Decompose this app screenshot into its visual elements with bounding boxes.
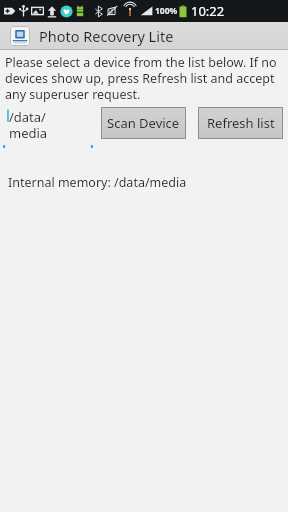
- staticText: Photo Recovery Lite: [39, 26, 174, 46]
- staticText: Internal memory: /data/media: [8, 174, 187, 191]
- staticText: 100%: [155, 5, 178, 17]
- staticText: Please select a device from the list bel…: [5, 54, 283, 103]
- staticText: 10:22: [191, 2, 225, 20]
- button[interactable]: Refresh list: [198, 107, 283, 139]
- button[interactable]: /data/ media: [2, 107, 96, 148]
- button[interactable]: Scan Device: [101, 107, 186, 139]
- staticText: Refresh list: [207, 114, 275, 132]
- staticText: Scan Device: [107, 114, 180, 132]
- staticText: /data/ media: [9, 108, 48, 141]
